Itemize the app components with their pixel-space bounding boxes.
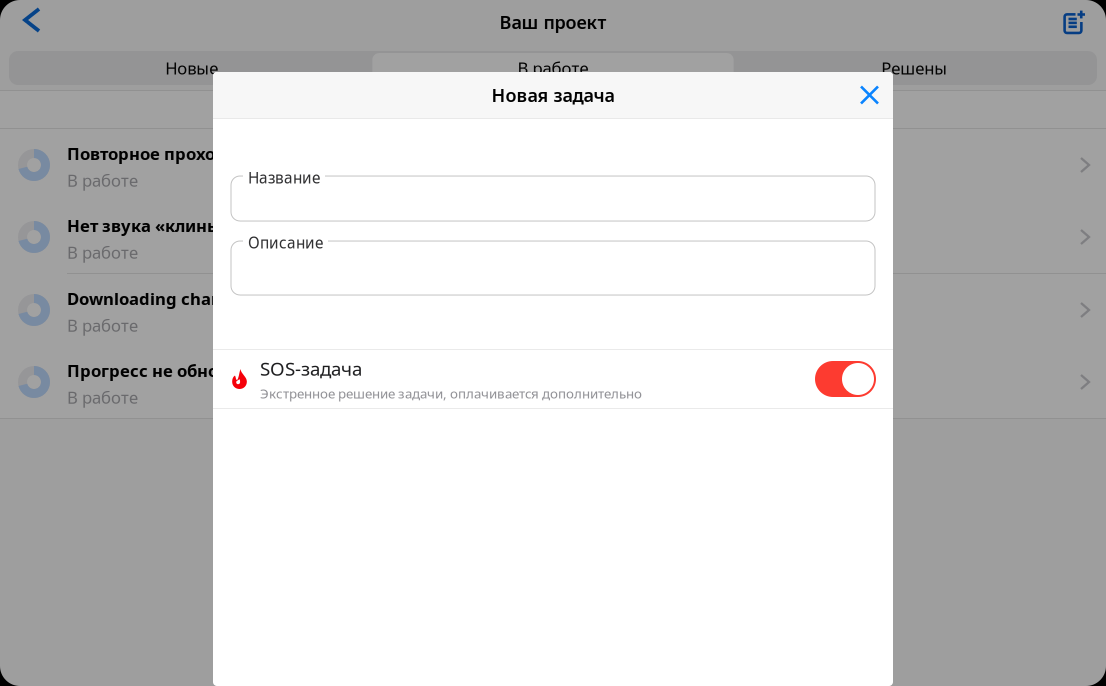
button[interactable]: Нет звука «клинь»	[0, 201, 1106, 273]
button[interactable]: Повторное прохождение	[0, 129, 1106, 201]
button[interactable]: SOS-задача	[213, 350, 893, 408]
staticText: SOS-задача	[260, 356, 362, 381]
staticText: Нет звука «клинь»	[67, 214, 227, 237]
staticText: Новая задача	[491, 83, 614, 107]
staticText: Повторное прохождение	[67, 142, 282, 165]
staticText: Экстренное решение задачи, оплачивается …	[260, 384, 642, 402]
button[interactable]: Прогресс не обновляется	[0, 346, 1106, 418]
staticText: В работе	[67, 241, 138, 264]
button[interactable]: Решены	[734, 53, 1095, 83]
staticText: В работе	[67, 314, 138, 337]
staticText: Новые	[165, 57, 218, 79]
staticText: Прогресс не обновляется	[67, 359, 285, 382]
staticText: В работе	[67, 169, 138, 192]
staticText: В работе	[67, 386, 138, 409]
staticText: Решены	[881, 57, 947, 79]
button[interactable]: В работе	[372, 53, 734, 83]
button[interactable]: Close	[846, 72, 893, 117]
staticText: В работе	[517, 57, 588, 79]
staticText: Downloading characters	[67, 287, 269, 310]
button[interactable]: Downloading characters	[0, 274, 1106, 346]
button[interactable]: New task	[1044, 0, 1106, 44]
button[interactable]: Back	[0, 0, 57, 44]
staticText: Описание	[248, 232, 323, 253]
staticText: Ваш проект	[499, 10, 606, 34]
staticText: Название	[248, 167, 320, 188]
button[interactable]: Новые	[11, 53, 372, 83]
